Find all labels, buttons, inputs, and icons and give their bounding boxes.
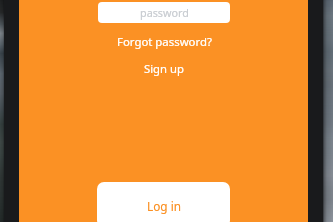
staticText: Sign up — [144, 61, 184, 76]
button[interactable]: Sign up — [98, 59, 230, 77]
button[interactable]: Log in — [97, 182, 230, 222]
staticText: Forgot password? — [117, 34, 212, 50]
staticText: Log in — [147, 198, 181, 214]
button[interactable]: Forgot password? — [98, 33, 230, 51]
staticText: password — [140, 5, 189, 20]
button[interactable]: password — [98, 2, 230, 23]
